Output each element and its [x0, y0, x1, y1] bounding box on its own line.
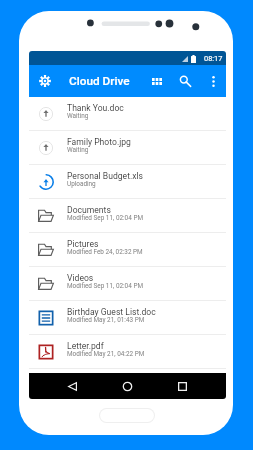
staticText: Birthday Guest List.doc — [67, 307, 156, 317]
button[interactable]: Thank You.doc — [29, 97, 226, 131]
staticText: Letter.pdf — [67, 341, 104, 351]
staticText: Videos — [67, 273, 94, 283]
button[interactable]: Family Photo.jpg — [29, 131, 226, 165]
staticText: Personal Budget.xls — [67, 171, 144, 181]
button[interactable]: Search — [174, 65, 196, 97]
staticText: Documents — [67, 205, 111, 215]
button[interactable]: Documents — [29, 199, 226, 233]
button[interactable]: Birthday Guest List.doc — [29, 301, 226, 335]
button[interactable]: Pictures — [29, 233, 226, 267]
button[interactable]: Cloud Drive — [69, 65, 130, 97]
button[interactable]: Personal Budget.xls — [29, 165, 226, 199]
staticText: Waiting — [67, 146, 89, 154]
button[interactable]: More options — [202, 65, 224, 97]
button[interactable]: Videos — [29, 267, 226, 301]
staticText: Thank You.doc — [67, 103, 124, 113]
staticText: Modified Sep 11, 02:04 PM — [67, 282, 143, 290]
staticText: Family Photo.jpg — [67, 137, 131, 147]
button[interactable]: Recent apps — [171, 373, 193, 399]
staticText: Modified May 21, 01:43 PM — [67, 316, 145, 324]
button[interactable]: Grid view — [146, 65, 168, 97]
staticText: Uploading — [67, 180, 96, 188]
button[interactable]: Settings — [34, 65, 55, 97]
button[interactable]: Letter.pdf — [29, 335, 226, 369]
staticText: Modified May 21, 04:22 PM — [67, 350, 145, 358]
button[interactable]: Back — [61, 373, 83, 399]
staticText: Pictures — [67, 239, 99, 249]
staticText: Cloud Drive — [69, 74, 130, 88]
button[interactable]: Home — [116, 373, 138, 399]
staticText: Modified Feb 24, 02:32 PM — [67, 248, 143, 256]
staticText: Modified Sep 11, 02:04 PM — [67, 214, 143, 222]
staticText: Waiting — [67, 112, 89, 120]
staticText: 08:17 — [204, 54, 223, 63]
